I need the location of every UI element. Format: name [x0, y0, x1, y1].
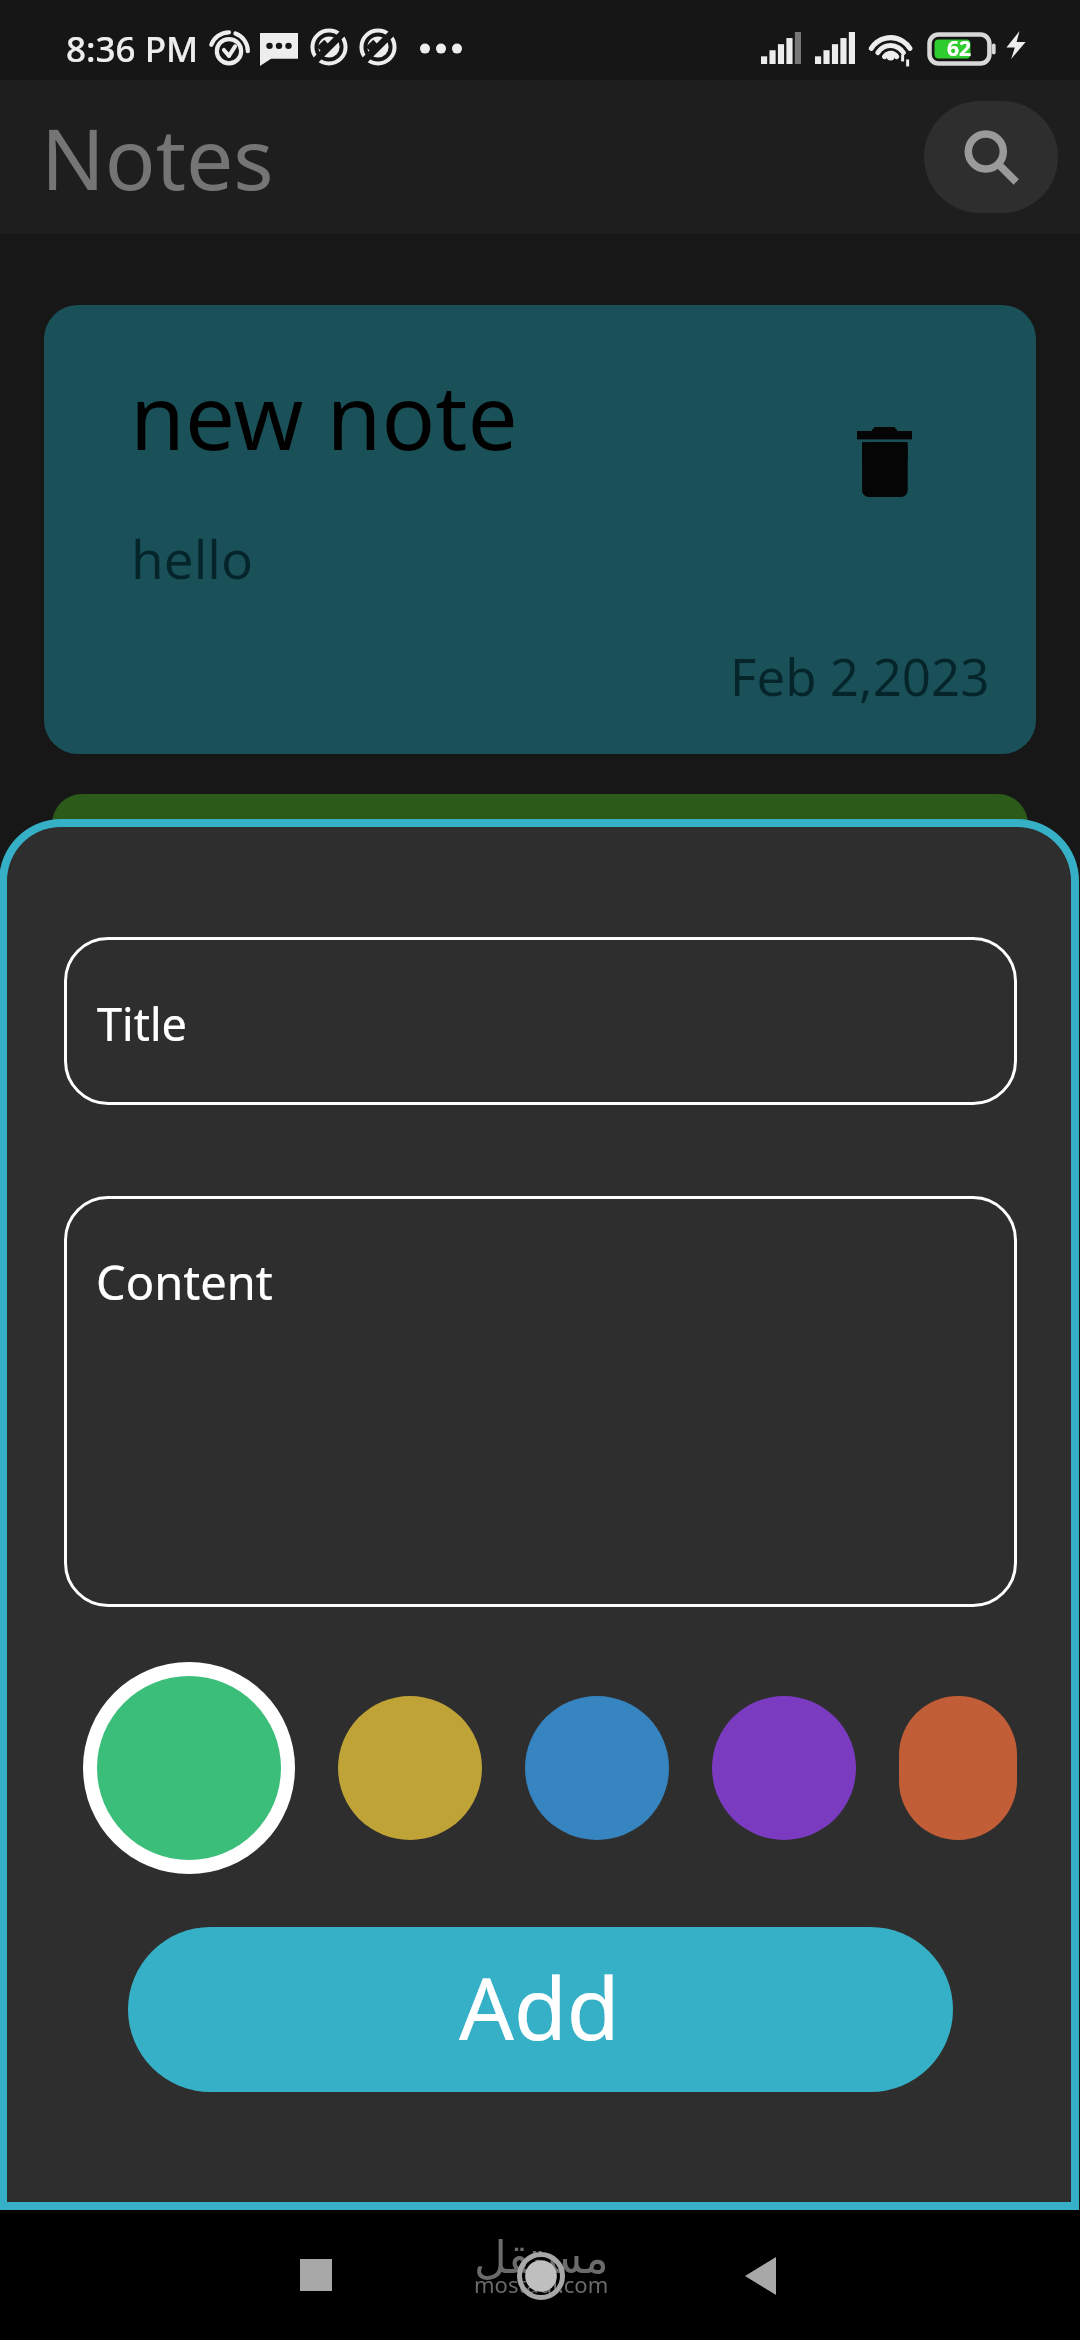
staticText: Content	[96, 1250, 273, 1314]
staticText: Notes	[41, 100, 274, 214]
staticText: Title	[97, 993, 187, 1054]
button[interactable]: Colour	[899, 1696, 1017, 1840]
button[interactable]: Colour	[338, 1696, 482, 1840]
staticText: 8:36 PM	[66, 25, 199, 73]
staticText: 62	[947, 34, 972, 63]
staticText: hello	[131, 522, 254, 594]
button[interactable]: Colour	[83, 1662, 295, 1874]
button[interactable]: Title	[64, 937, 1017, 1105]
button[interactable]: Content	[64, 1196, 1017, 1607]
staticText: Feb 2,2023	[730, 641, 990, 710]
button[interactable]: Colour	[712, 1696, 856, 1840]
button[interactable]: Add	[128, 1927, 953, 2092]
button[interactable]: Colour	[525, 1696, 669, 1840]
button[interactable]: Delete note	[857, 427, 912, 497]
button[interactable]: new note	[44, 305, 1036, 754]
staticText: new note	[130, 355, 518, 476]
staticText: Add	[459, 1948, 620, 2065]
staticText: مستقل	[474, 2231, 609, 2283]
button[interactable]: Home	[517, 2252, 565, 2300]
button[interactable]: Search	[924, 101, 1058, 213]
button[interactable]: Back	[745, 2257, 776, 2295]
staticText: mostaql.com	[474, 2269, 609, 2299]
